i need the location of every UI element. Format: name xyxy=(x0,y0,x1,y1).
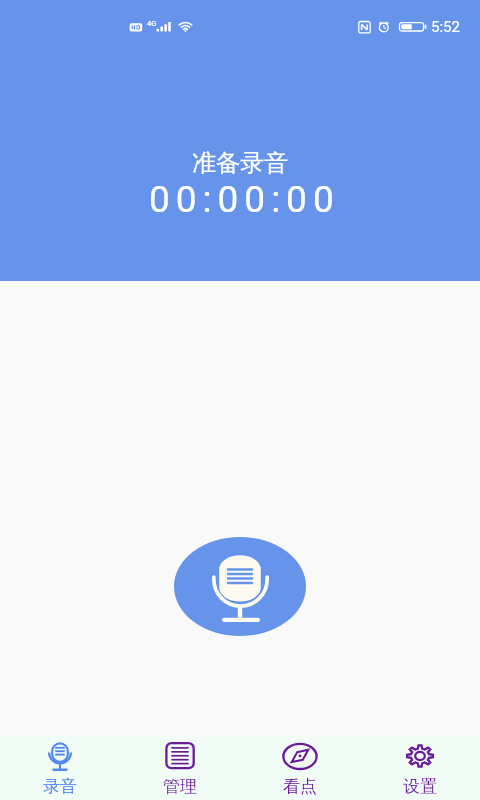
staticText: 管理 xyxy=(163,776,197,797)
button[interactable]: Start recording xyxy=(174,537,306,636)
staticText: 4G xyxy=(147,19,157,28)
staticText: 录音 xyxy=(43,776,77,797)
button[interactable]: Discover xyxy=(240,736,360,800)
staticText: 看点 xyxy=(283,776,317,797)
staticText: 00:00:00 xyxy=(149,178,340,221)
button[interactable]: Manage xyxy=(120,736,240,800)
staticText: 准备录音 xyxy=(192,148,288,178)
staticText: 5:52 xyxy=(431,18,460,36)
button[interactable]: Record xyxy=(0,736,120,800)
staticText: 设置 xyxy=(403,776,437,797)
button[interactable]: Settings xyxy=(360,736,480,800)
